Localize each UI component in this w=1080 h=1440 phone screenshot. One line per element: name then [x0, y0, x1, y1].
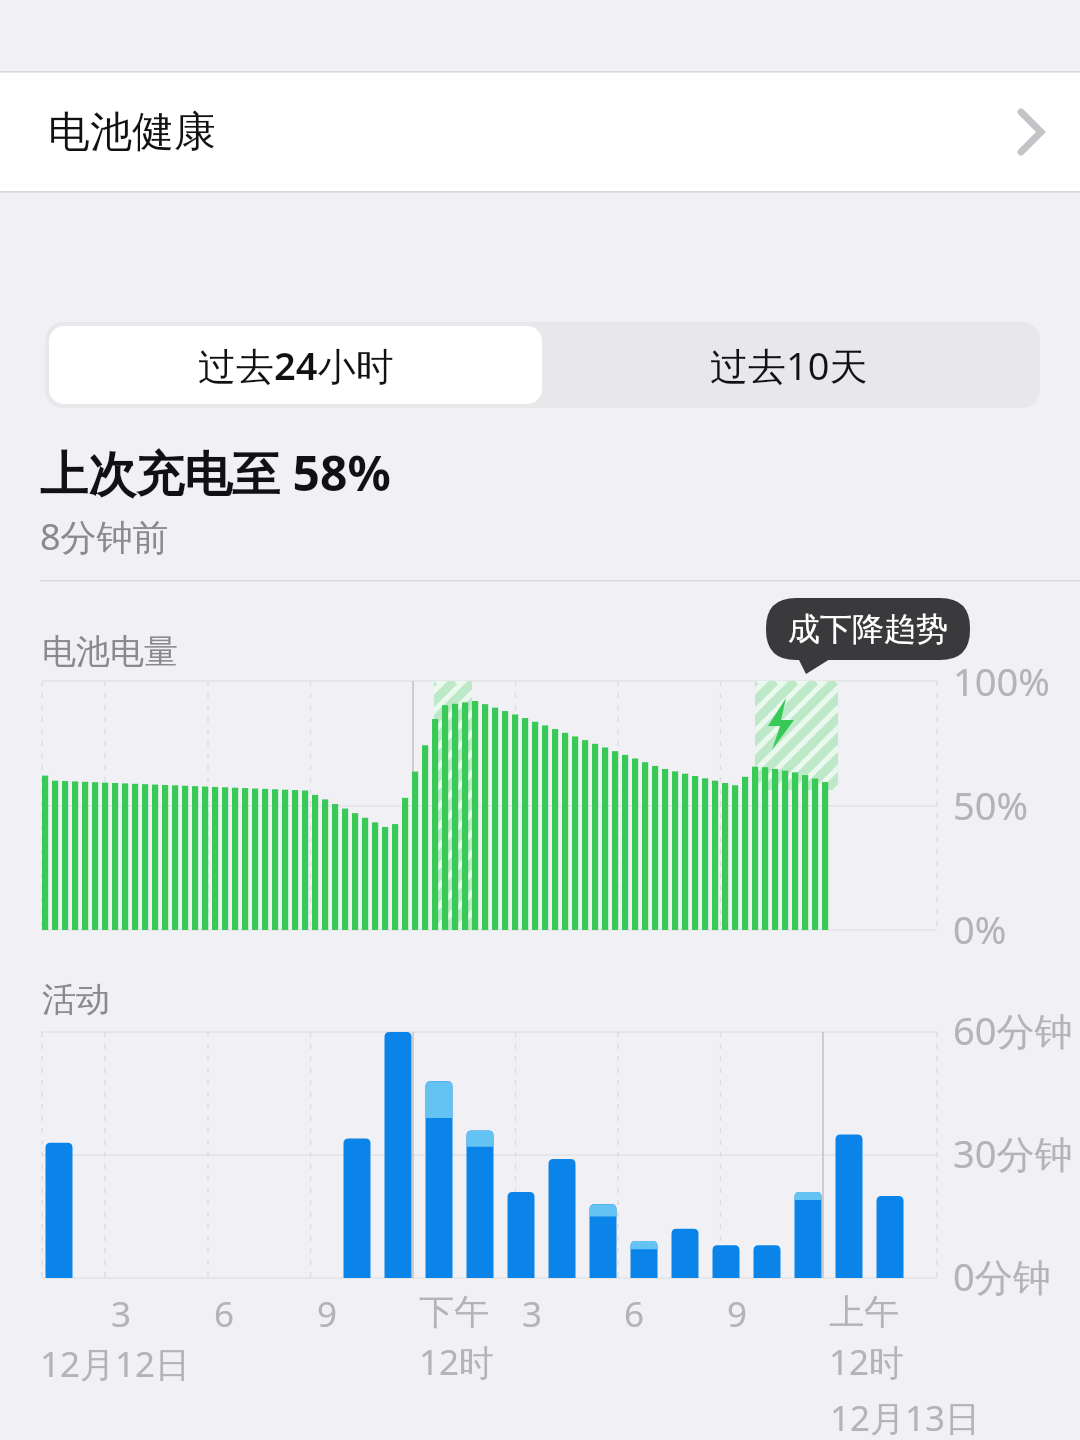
staticText: 30分钟 [953, 1127, 1073, 1179]
staticText: 8分钟前 [40, 512, 169, 561]
staticText: 0% [953, 903, 1007, 955]
staticText: 12时 [419, 1338, 495, 1386]
staticText: 6 [214, 1290, 235, 1338]
staticText: 电池健康 [48, 106, 216, 159]
staticText: 3 [522, 1290, 543, 1338]
staticText: 12月12日 [40, 1340, 191, 1388]
button[interactable]: 过去24小时 [49, 326, 542, 404]
button[interactable]: 电池健康 [0, 72, 1080, 192]
other: 电池健康详情 [1000, 72, 1080, 192]
staticText: 3 [111, 1290, 132, 1338]
button[interactable]: 过去10天 [542, 326, 1036, 404]
staticText: 电池电量 [42, 630, 178, 673]
staticText: 6 [624, 1290, 645, 1338]
button[interactable]: 成下降趋势 [766, 598, 970, 660]
staticText: 上次充电至 58% [40, 440, 391, 506]
staticText: 上午 [829, 1290, 899, 1334]
staticText: 9 [727, 1290, 748, 1338]
staticText: 过去24小时 [198, 339, 394, 391]
staticText: 12月13日 [830, 1394, 981, 1440]
staticText: 成下降趋势 [788, 609, 948, 649]
staticText: 0分钟 [953, 1250, 1051, 1302]
staticText: 100% [953, 655, 1050, 707]
staticText: 12时 [829, 1338, 905, 1386]
staticText: 活动 [42, 978, 110, 1021]
staticText: 过去10天 [710, 339, 868, 391]
staticText: 下午 [419, 1290, 489, 1334]
staticText: 9 [317, 1290, 338, 1338]
staticText: 50% [953, 779, 1029, 831]
staticText: 60分钟 [953, 1004, 1073, 1056]
